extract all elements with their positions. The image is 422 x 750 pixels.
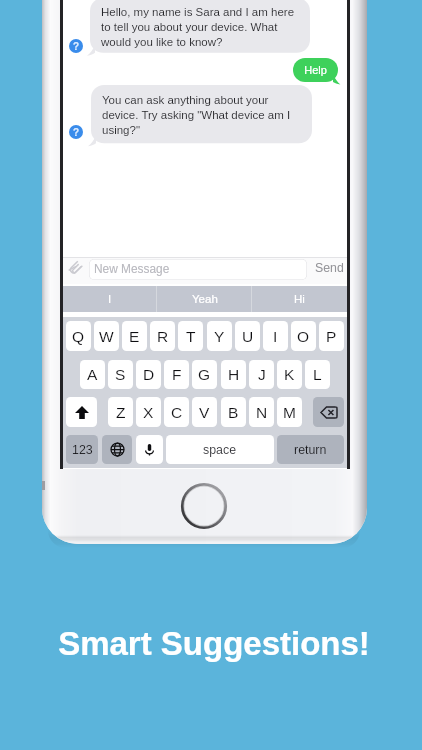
button[interactable]: S xyxy=(108,360,133,389)
button[interactable]: U xyxy=(235,321,260,351)
staticText: X xyxy=(143,404,154,421)
staticText: ? xyxy=(73,41,80,52)
button[interactable]: M xyxy=(277,397,302,427)
staticText: Send xyxy=(315,261,344,275)
staticText: P xyxy=(326,328,337,345)
staticText: You can ask anything about your device. … xyxy=(102,94,291,136)
staticText: C xyxy=(171,404,183,421)
button[interactable]: Shift xyxy=(66,397,97,427)
staticText: T xyxy=(186,328,196,345)
staticText: Yeah xyxy=(192,293,218,306)
button[interactable]: Send xyxy=(312,257,346,278)
staticText: L xyxy=(313,366,322,383)
staticText: N xyxy=(256,404,268,421)
staticText: G xyxy=(198,366,211,383)
staticText: H xyxy=(228,366,240,383)
button[interactable]: Assistant avatar xyxy=(69,39,83,53)
button[interactable]: Q xyxy=(66,321,91,351)
button[interactable]: K xyxy=(277,360,302,389)
button[interactable]: T xyxy=(178,321,203,351)
button[interactable]: Hi xyxy=(252,286,347,312)
staticText: Help xyxy=(293,64,338,82)
button[interactable]: Dictate xyxy=(136,435,163,464)
staticText: J xyxy=(258,366,266,383)
button[interactable]: F xyxy=(164,360,189,389)
staticText: O xyxy=(297,328,310,345)
button[interactable]: Assistant avatar xyxy=(69,125,83,139)
staticText: ? xyxy=(73,127,80,138)
button[interactable]: O xyxy=(291,321,316,351)
button[interactable]: Switch keyboard xyxy=(102,435,132,464)
button[interactable]: Attach file xyxy=(68,261,83,275)
button[interactable]: C xyxy=(164,397,189,427)
staticText: S xyxy=(115,366,126,383)
staticText: Hello, my name is Sara and I am here to … xyxy=(101,6,295,48)
button[interactable]: Numbers xyxy=(66,435,98,464)
button[interactable]: N xyxy=(249,397,274,427)
button[interactable]: Help xyxy=(293,58,344,87)
button[interactable]: W xyxy=(94,321,119,351)
button[interactable]: New Message xyxy=(89,259,307,280)
staticText: 123 xyxy=(72,443,93,457)
button[interactable]: space xyxy=(166,435,274,464)
button[interactable]: E xyxy=(122,321,147,351)
button[interactable]: I xyxy=(63,286,157,312)
staticText: W xyxy=(99,328,114,345)
staticText: Hi xyxy=(294,293,305,306)
staticText: return xyxy=(294,443,327,457)
button[interactable]: L xyxy=(305,360,330,389)
staticText: D xyxy=(143,366,155,383)
button[interactable]: Z xyxy=(108,397,133,427)
button[interactable] xyxy=(85,85,312,148)
button[interactable]: D xyxy=(136,360,161,389)
button[interactable] xyxy=(84,0,310,58)
staticText: E xyxy=(129,328,140,345)
staticText: U xyxy=(242,328,254,345)
button[interactable]: X xyxy=(136,397,161,427)
staticText: I xyxy=(108,293,112,306)
staticText: space xyxy=(203,443,237,457)
staticText: F xyxy=(172,366,182,383)
button[interactable]: Y xyxy=(207,321,232,351)
staticText: New Message xyxy=(94,262,170,275)
button[interactable]: Backspace xyxy=(313,397,344,427)
button[interactable]: V xyxy=(192,397,217,427)
button[interactable]: R xyxy=(150,321,175,351)
staticText: I xyxy=(273,328,278,345)
staticText: Y xyxy=(214,328,225,345)
staticText: R xyxy=(157,328,169,345)
staticText: Z xyxy=(116,404,126,421)
staticText: V xyxy=(199,404,210,421)
staticText: M xyxy=(283,404,296,421)
button[interactable]: Yeah xyxy=(157,286,252,312)
button[interactable]: J xyxy=(249,360,274,389)
staticText: A xyxy=(87,366,98,383)
staticText: Q xyxy=(72,328,85,345)
staticText: Smart Suggestions! xyxy=(3,625,422,662)
button[interactable]: return xyxy=(277,435,344,464)
button[interactable]: G xyxy=(192,360,217,389)
button[interactable]: P xyxy=(319,321,344,351)
button[interactable]: Home xyxy=(180,482,228,530)
button[interactable]: H xyxy=(221,360,246,389)
button[interactable]: B xyxy=(221,397,246,427)
staticText: B xyxy=(228,404,239,421)
button[interactable]: A xyxy=(80,360,105,389)
button[interactable]: I xyxy=(263,321,288,351)
staticText: K xyxy=(284,366,295,383)
